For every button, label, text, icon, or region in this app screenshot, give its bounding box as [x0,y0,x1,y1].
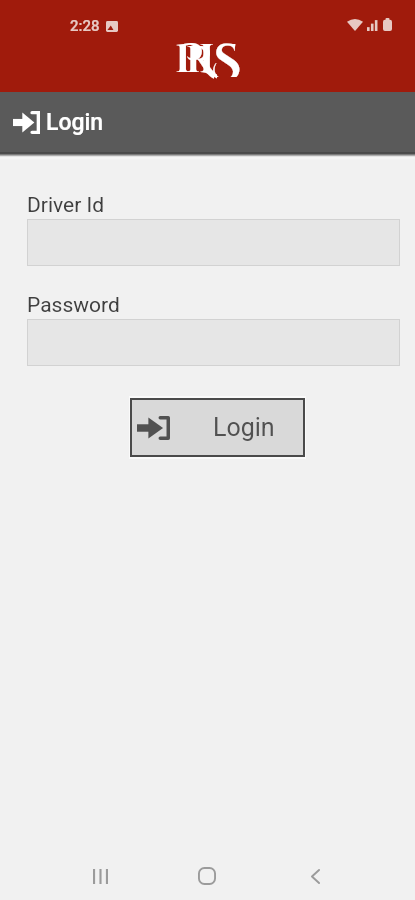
staticText: 2:28 [70,17,100,35]
button[interactable]: Back [287,848,343,900]
button[interactable]: Recent apps [72,848,128,900]
staticText: P [175,33,204,79]
staticText: Password [27,293,120,318]
button[interactable] [27,319,400,366]
staticText: Login [213,413,275,442]
button[interactable]: Home [179,848,235,900]
staticText: S [212,31,241,77]
button[interactable] [27,219,400,266]
button[interactable]: Login [130,398,305,457]
staticText: L [199,33,217,79]
staticText: Driver Id [27,193,105,218]
button[interactable]: Login [13,92,415,153]
staticText: Login [46,109,104,136]
staticText: R [186,36,214,82]
